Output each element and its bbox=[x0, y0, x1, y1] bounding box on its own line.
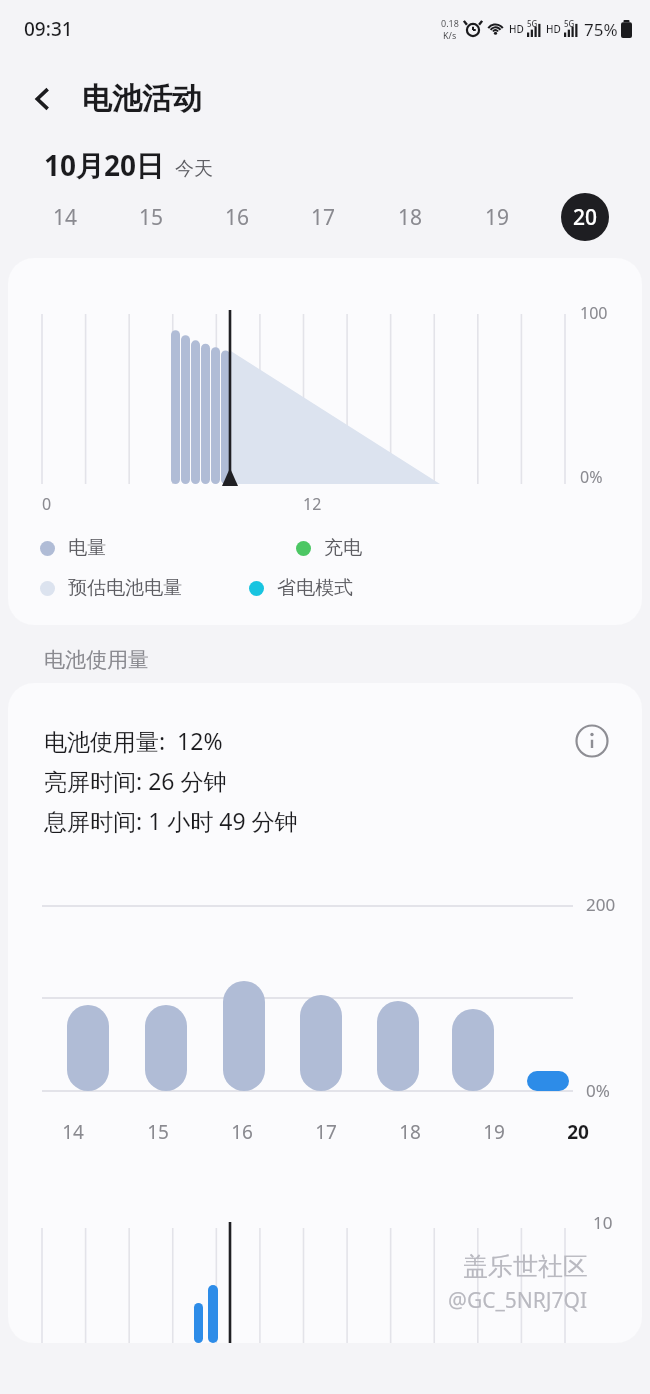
button[interactable]: 20 bbox=[541, 184, 628, 250]
staticText: 盖乐世社区 bbox=[463, 1251, 588, 1282]
button[interactable]: Back bbox=[16, 72, 70, 126]
button[interactable]: 20 bbox=[536, 1115, 620, 1149]
staticText: 14 bbox=[62, 1119, 84, 1145]
staticText: 14 bbox=[53, 203, 78, 232]
button[interactable]: 14 bbox=[22, 184, 108, 250]
button[interactable]: 18 bbox=[367, 184, 454, 250]
staticText: 20 bbox=[573, 203, 598, 232]
staticText: 5G bbox=[564, 18, 575, 29]
staticText: 5G bbox=[527, 18, 538, 29]
staticText: 息屏时间: 1 小时 49 分钟 bbox=[44, 805, 298, 836]
button[interactable]: Info bbox=[570, 719, 614, 763]
staticText: 16 bbox=[231, 1119, 253, 1145]
staticText: 18 bbox=[399, 1119, 421, 1145]
button[interactable]: 19 bbox=[452, 1115, 536, 1149]
button[interactable]: 17 bbox=[284, 1115, 368, 1149]
staticText: 12 bbox=[303, 493, 322, 515]
button[interactable]: 16 bbox=[200, 1115, 284, 1149]
staticText: 0 bbox=[42, 493, 52, 515]
button[interactable]: 19 bbox=[454, 184, 541, 250]
staticText: 17 bbox=[315, 1119, 337, 1145]
staticText: 充电 bbox=[324, 536, 362, 560]
staticText: 20 bbox=[567, 1119, 589, 1145]
staticText: @GC_5NRJ7QI bbox=[448, 1286, 588, 1315]
staticText: 100 bbox=[580, 302, 608, 324]
staticText: 0.18 bbox=[441, 17, 459, 29]
button[interactable]: 16 bbox=[194, 184, 280, 250]
button[interactable]: 15 bbox=[108, 184, 194, 250]
staticText: 200 bbox=[586, 893, 616, 916]
staticText: 今天 bbox=[175, 157, 213, 181]
staticText: 18 bbox=[398, 203, 423, 232]
staticText: 16 bbox=[225, 203, 250, 232]
button[interactable]: 14 bbox=[30, 1115, 115, 1149]
staticText: 19 bbox=[485, 203, 510, 232]
staticText: 15 bbox=[147, 1119, 169, 1145]
button[interactable]: 15 bbox=[115, 1115, 200, 1149]
staticText: 亮屏时间: 26 分钟 bbox=[44, 765, 227, 796]
staticText: 09:31 bbox=[24, 16, 73, 42]
staticText: 电池使用量: 12% bbox=[44, 725, 223, 756]
staticText: 电量 bbox=[68, 536, 106, 560]
staticText: 0% bbox=[586, 1079, 610, 1102]
staticText: 省电模式 bbox=[277, 576, 353, 600]
staticText: K/s bbox=[443, 29, 457, 41]
staticText: HD bbox=[509, 22, 524, 36]
staticText: 19 bbox=[483, 1119, 505, 1145]
staticText: 0% bbox=[580, 466, 603, 488]
button[interactable]: 17 bbox=[280, 184, 367, 250]
staticText: 17 bbox=[311, 203, 336, 232]
staticText: 10 bbox=[593, 1211, 613, 1234]
staticText: 预估电池电量 bbox=[68, 576, 182, 600]
staticText: 75% bbox=[584, 18, 618, 41]
staticText: 电池活动 bbox=[82, 80, 202, 118]
staticText: HD bbox=[546, 22, 561, 36]
staticText: 10月20日 bbox=[44, 146, 165, 184]
staticText: 15 bbox=[139, 203, 164, 232]
staticText: 电池使用量 bbox=[44, 647, 149, 673]
button[interactable]: 18 bbox=[368, 1115, 452, 1149]
